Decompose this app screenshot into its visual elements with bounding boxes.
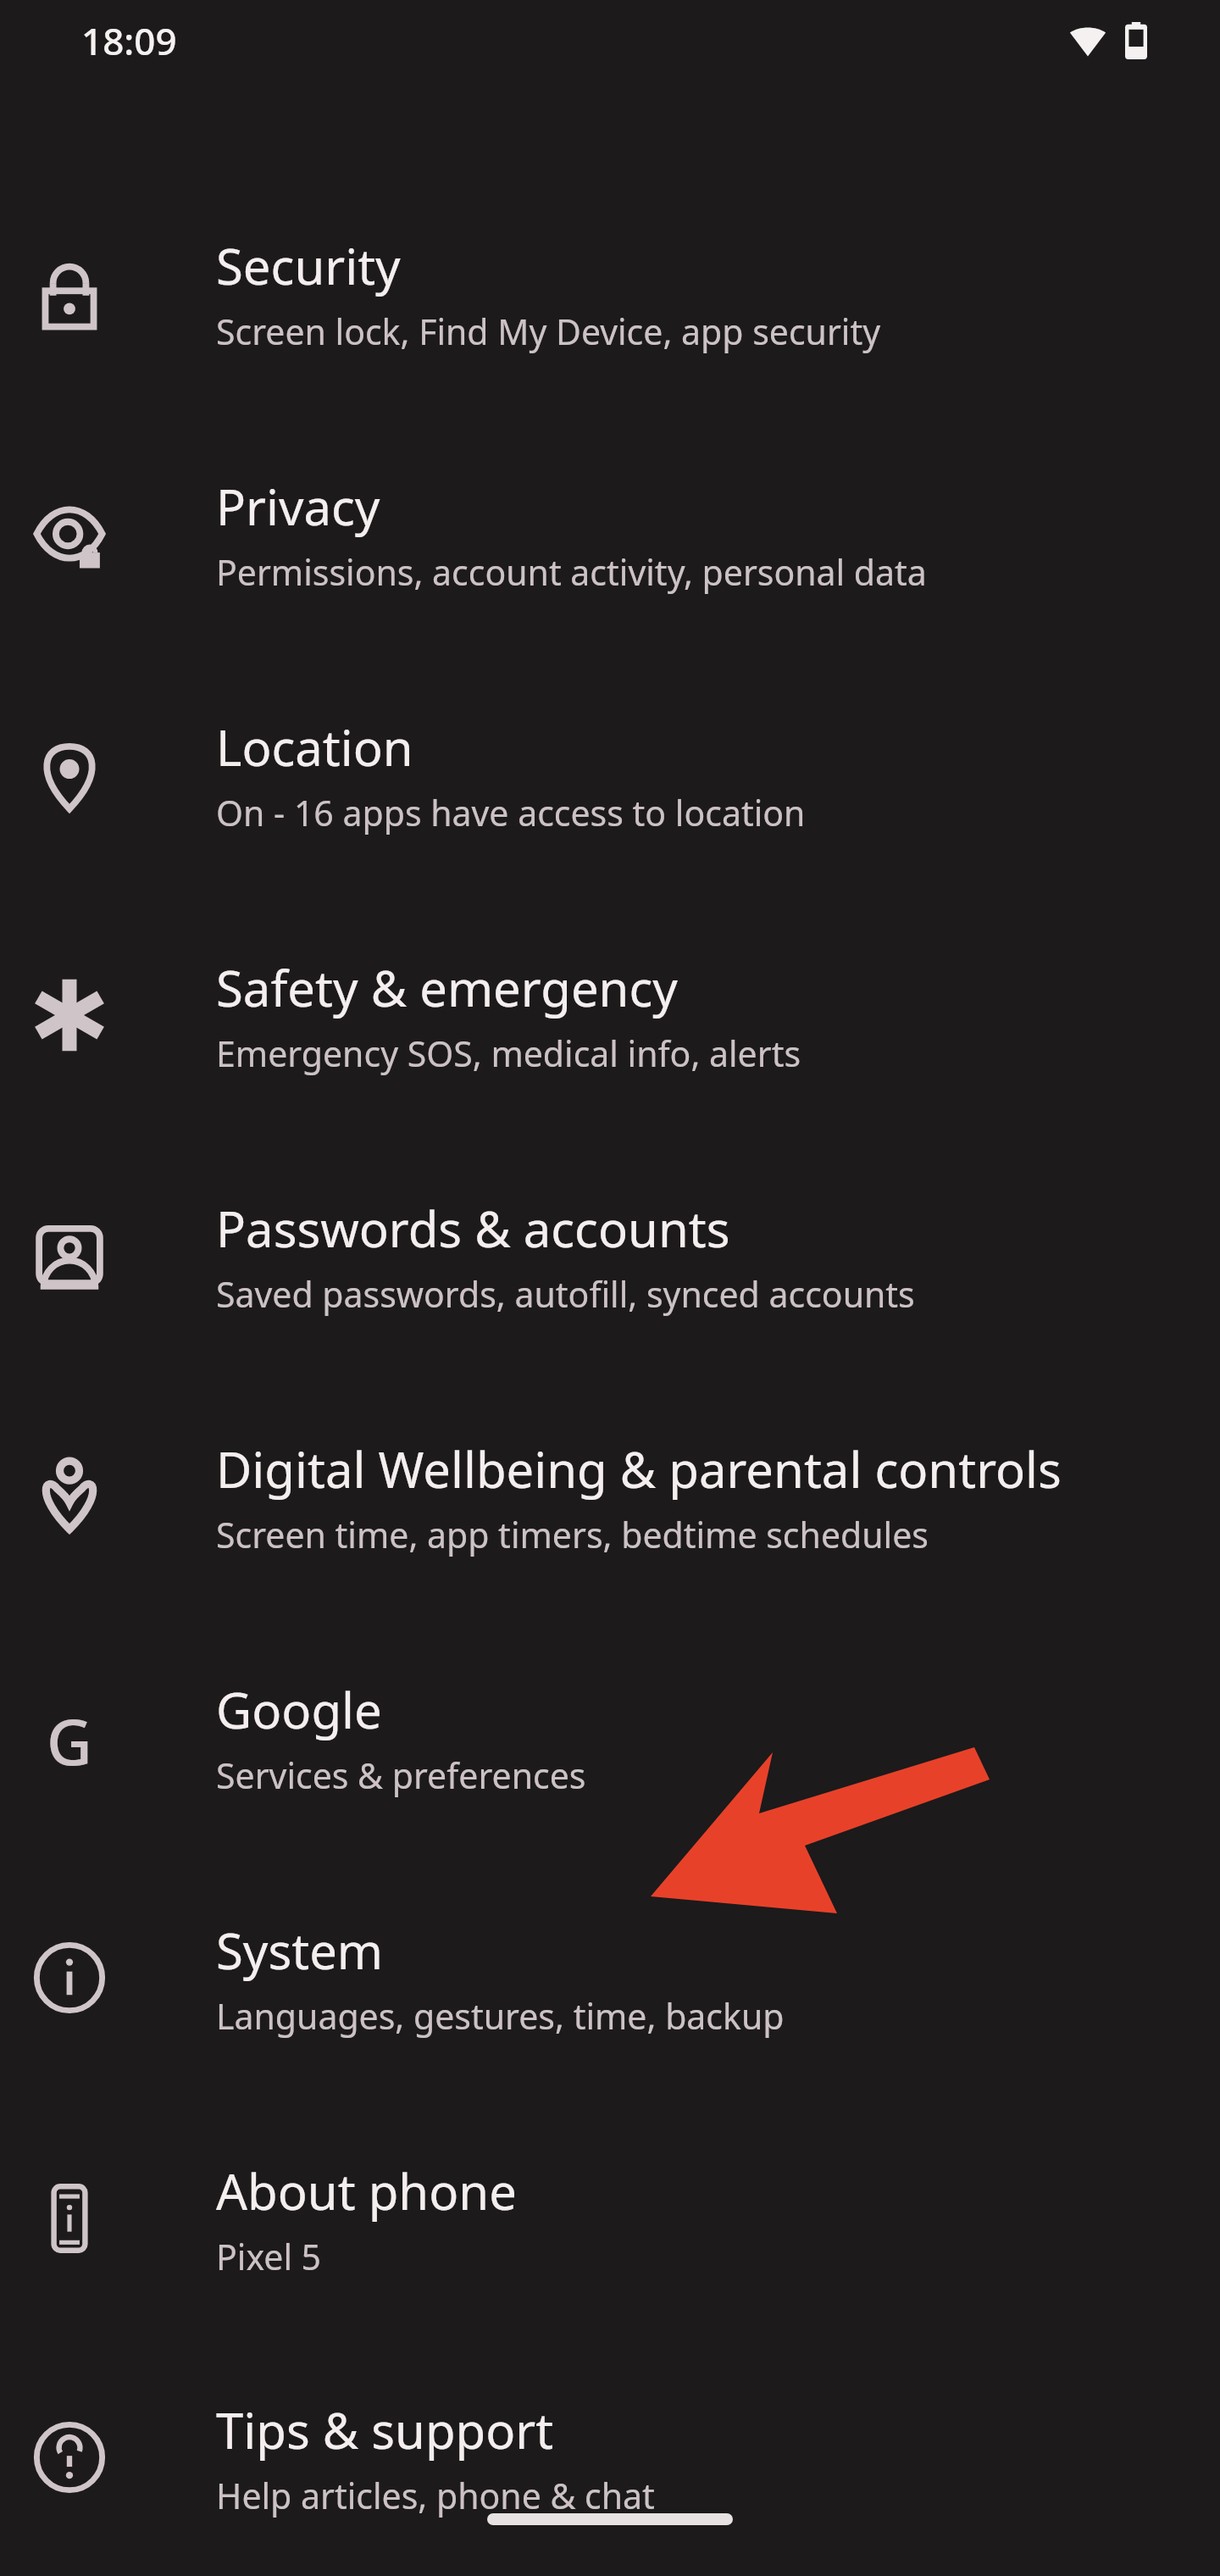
staticText: Permissions, account activity, personal … bbox=[216, 548, 927, 596]
button[interactable]: Location bbox=[0, 654, 1220, 895]
button[interactable]: Digital Wellbeing & parental controls bbox=[0, 1376, 1220, 1617]
staticText: Pixel 5 bbox=[216, 2233, 322, 2280]
staticText: About phone bbox=[216, 2157, 517, 2224]
staticText: Digital Wellbeing & parental controls bbox=[216, 1435, 1062, 1502]
staticText: Screen time, app timers, bedtime schedul… bbox=[216, 1511, 929, 1558]
staticText: Saved passwords, autofill, synced accoun… bbox=[216, 1270, 915, 1318]
staticText: Google bbox=[216, 1676, 382, 1743]
staticText: Safety & emergency bbox=[216, 954, 678, 1021]
button[interactable]: Privacy bbox=[0, 414, 1220, 654]
button[interactable]: G bbox=[0, 1617, 1220, 1857]
staticText: 18:09 bbox=[81, 15, 177, 66]
button[interactable]: Safety & emergency bbox=[0, 895, 1220, 1135]
staticText: Tips & support bbox=[216, 2396, 554, 2463]
staticText: Help articles, phone & chat bbox=[216, 2472, 655, 2519]
staticText: G bbox=[47, 1698, 92, 1776]
staticText: Privacy bbox=[216, 473, 380, 540]
staticText: Services & preferences bbox=[216, 1752, 586, 1799]
button[interactable]: System bbox=[0, 1857, 1220, 2098]
staticText: Emergency SOS, medical info, alerts bbox=[216, 1030, 801, 1077]
staticText: Location bbox=[216, 713, 413, 780]
staticText: Languages, gestures, time, backup bbox=[216, 1992, 785, 2040]
button[interactable]: About phone bbox=[0, 2098, 1220, 2339]
staticText: System bbox=[216, 1917, 384, 1984]
staticText: On - 16 apps have access to location bbox=[216, 789, 806, 836]
button[interactable]: Passwords & accounts bbox=[0, 1135, 1220, 1376]
staticText: Screen lock, Find My Device, app securit… bbox=[216, 308, 881, 355]
button[interactable]: Tips & support bbox=[0, 2339, 1220, 2576]
staticText: Passwords & accounts bbox=[216, 1195, 730, 1262]
button[interactable]: Security bbox=[0, 173, 1220, 414]
staticText: Security bbox=[216, 232, 401, 299]
